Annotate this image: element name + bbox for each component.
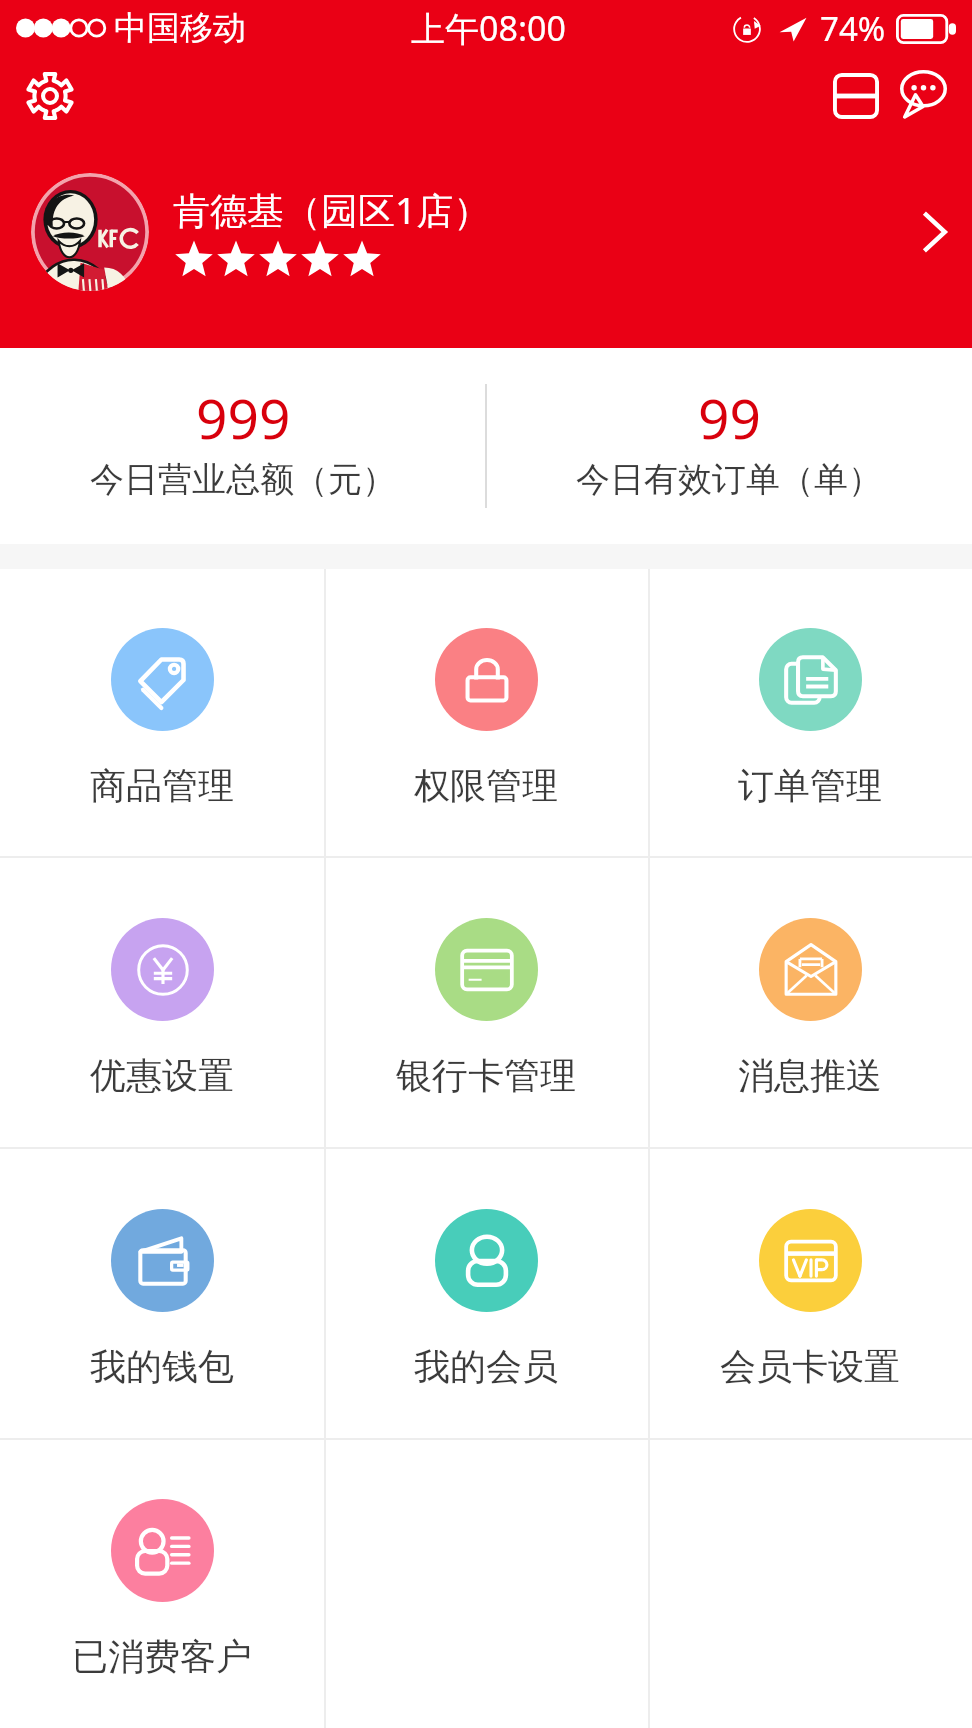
- staticText: 999: [196, 380, 291, 455]
- staticText: 上午08:00: [411, 5, 566, 51]
- staticText: 会员卡设置: [720, 1344, 900, 1389]
- button[interactable]: 我的会员: [324, 1154, 648, 1443]
- button[interactable]: Settings: [8, 56, 92, 136]
- staticText: 我的钱包: [90, 1344, 234, 1389]
- staticText: 74%: [820, 6, 886, 51]
- button[interactable]: 优惠设置: [0, 863, 324, 1152]
- button[interactable]: 订单管理: [648, 574, 972, 861]
- staticText: 银行卡管理: [396, 1053, 576, 1098]
- staticText: 我的会员: [414, 1344, 558, 1389]
- staticText: 订单管理: [738, 763, 882, 808]
- button[interactable]: 银行卡管理: [324, 863, 648, 1152]
- staticText: 已消费客户: [72, 1634, 252, 1679]
- button[interactable]: 商品管理: [0, 574, 324, 861]
- staticText: 99: [698, 380, 761, 455]
- button[interactable]: 肯德基（园区1店）: [0, 152, 972, 312]
- staticText: 权限管理: [414, 763, 558, 808]
- button[interactable]: Messages: [881, 53, 965, 133]
- button[interactable]: 已消费客户: [0, 1445, 324, 1728]
- staticText: 消息推送: [738, 1053, 882, 1098]
- button[interactable]: 我的钱包: [0, 1154, 324, 1443]
- button[interactable]: 99: [486, 340, 972, 536]
- staticText: 优惠设置: [90, 1053, 234, 1098]
- staticText: 今日有效订单（单）: [576, 458, 882, 501]
- button[interactable]: 权限管理: [324, 574, 648, 861]
- staticText: 肯德基（园区1店）: [173, 184, 491, 235]
- staticText: 今日营业总额（元）: [90, 458, 396, 501]
- staticText: 中国移动: [114, 7, 246, 49]
- button[interactable]: 会员卡设置: [648, 1154, 972, 1443]
- button[interactable]: 999: [0, 340, 486, 536]
- staticText: 商品管理: [90, 763, 234, 808]
- button[interactable]: Split screen: [814, 56, 898, 136]
- button[interactable]: 消息推送: [648, 863, 972, 1152]
